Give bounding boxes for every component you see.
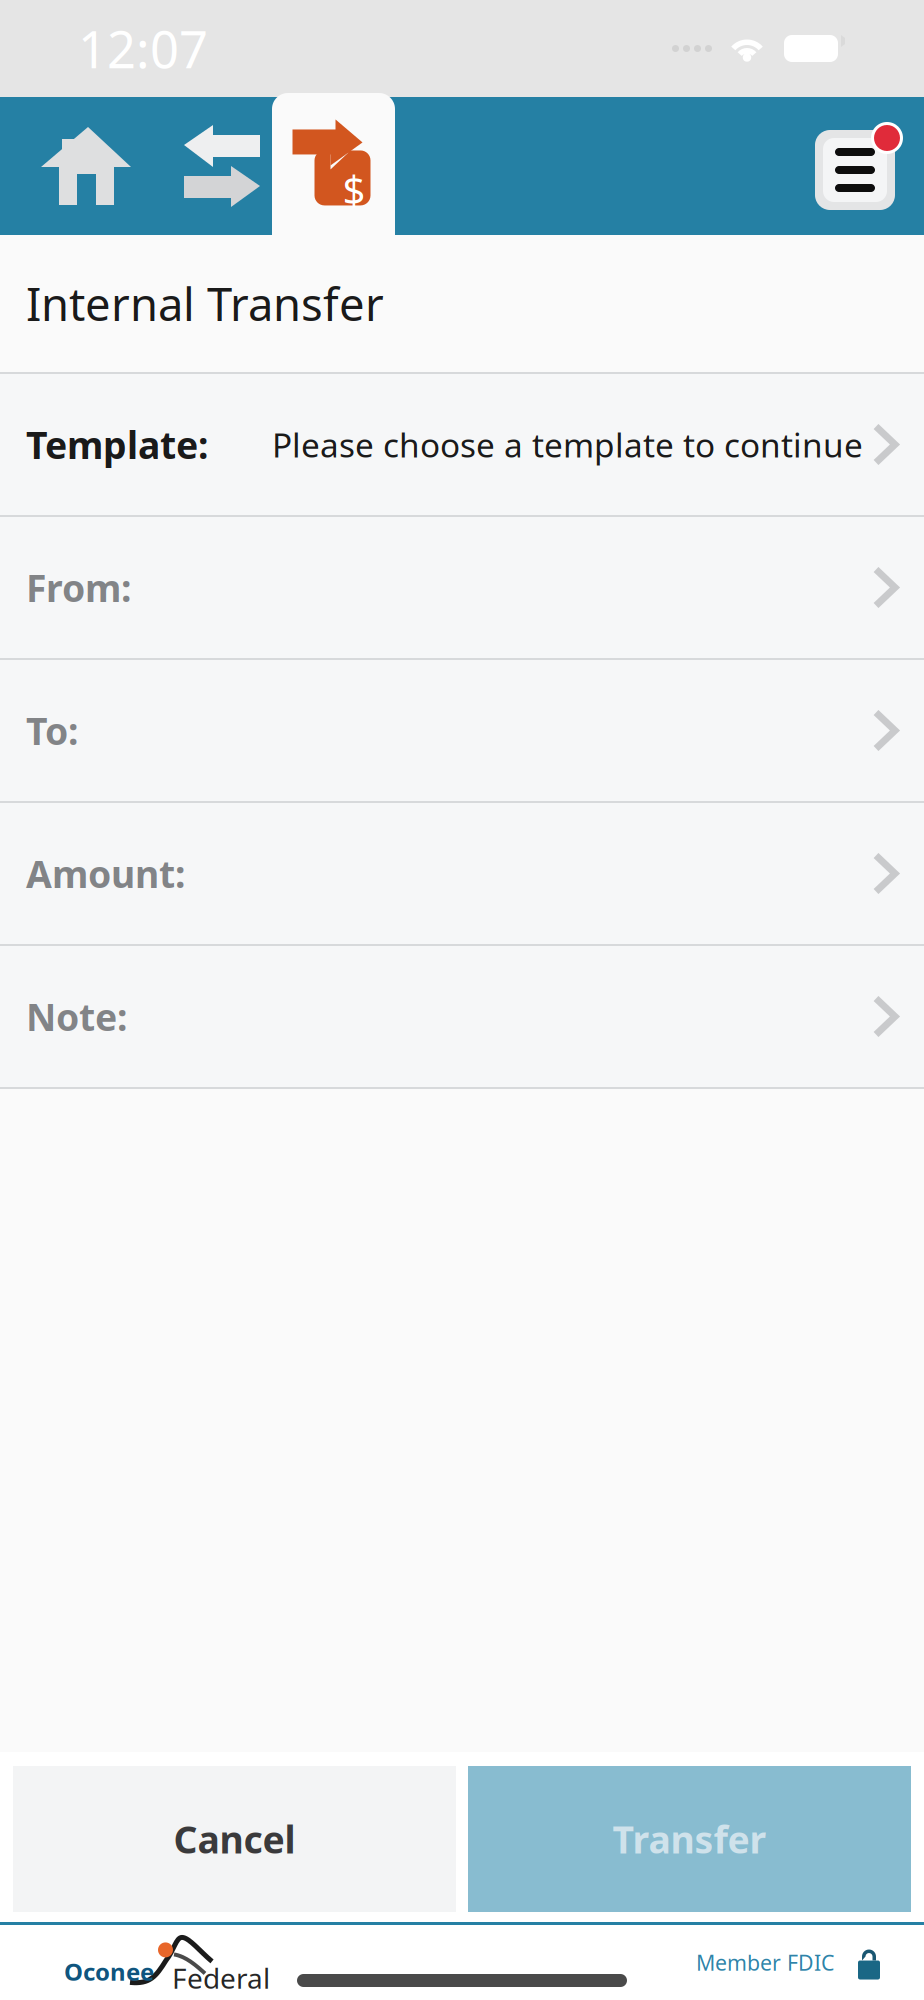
button[interactable]: To: bbox=[0, 660, 924, 803]
button[interactable]: Transfers bbox=[172, 97, 272, 235]
button[interactable]: From: bbox=[0, 517, 924, 660]
button[interactable]: Transfer bbox=[468, 1766, 911, 1912]
staticText: Oconee bbox=[64, 1955, 154, 1987]
staticText: Note: bbox=[26, 992, 127, 1041]
button[interactable]: Template: bbox=[0, 374, 924, 517]
button[interactable]: Menu bbox=[794, 97, 924, 235]
staticText: Federal bbox=[172, 1959, 270, 1997]
staticText: Cancel bbox=[173, 1814, 295, 1864]
staticText: Please choose a template to continue bbox=[272, 422, 863, 467]
button[interactable]: Internal Transfer bbox=[272, 97, 395, 235]
staticText: Member FDIC bbox=[696, 1948, 834, 1977]
button[interactable]: Note: bbox=[0, 946, 924, 1089]
staticText: Internal Transfer bbox=[26, 273, 384, 334]
staticText: Transfer bbox=[612, 1814, 766, 1864]
staticText: 12:07 bbox=[78, 15, 208, 82]
staticText: To: bbox=[26, 706, 78, 755]
button[interactable]: Home bbox=[0, 97, 172, 235]
staticText: Amount: bbox=[26, 849, 185, 898]
staticText: From: bbox=[26, 563, 131, 612]
button[interactable]: Amount: bbox=[0, 803, 924, 946]
button[interactable]: Cancel bbox=[13, 1766, 456, 1912]
staticText: Template: bbox=[26, 420, 208, 469]
staticText: $ bbox=[342, 162, 365, 215]
